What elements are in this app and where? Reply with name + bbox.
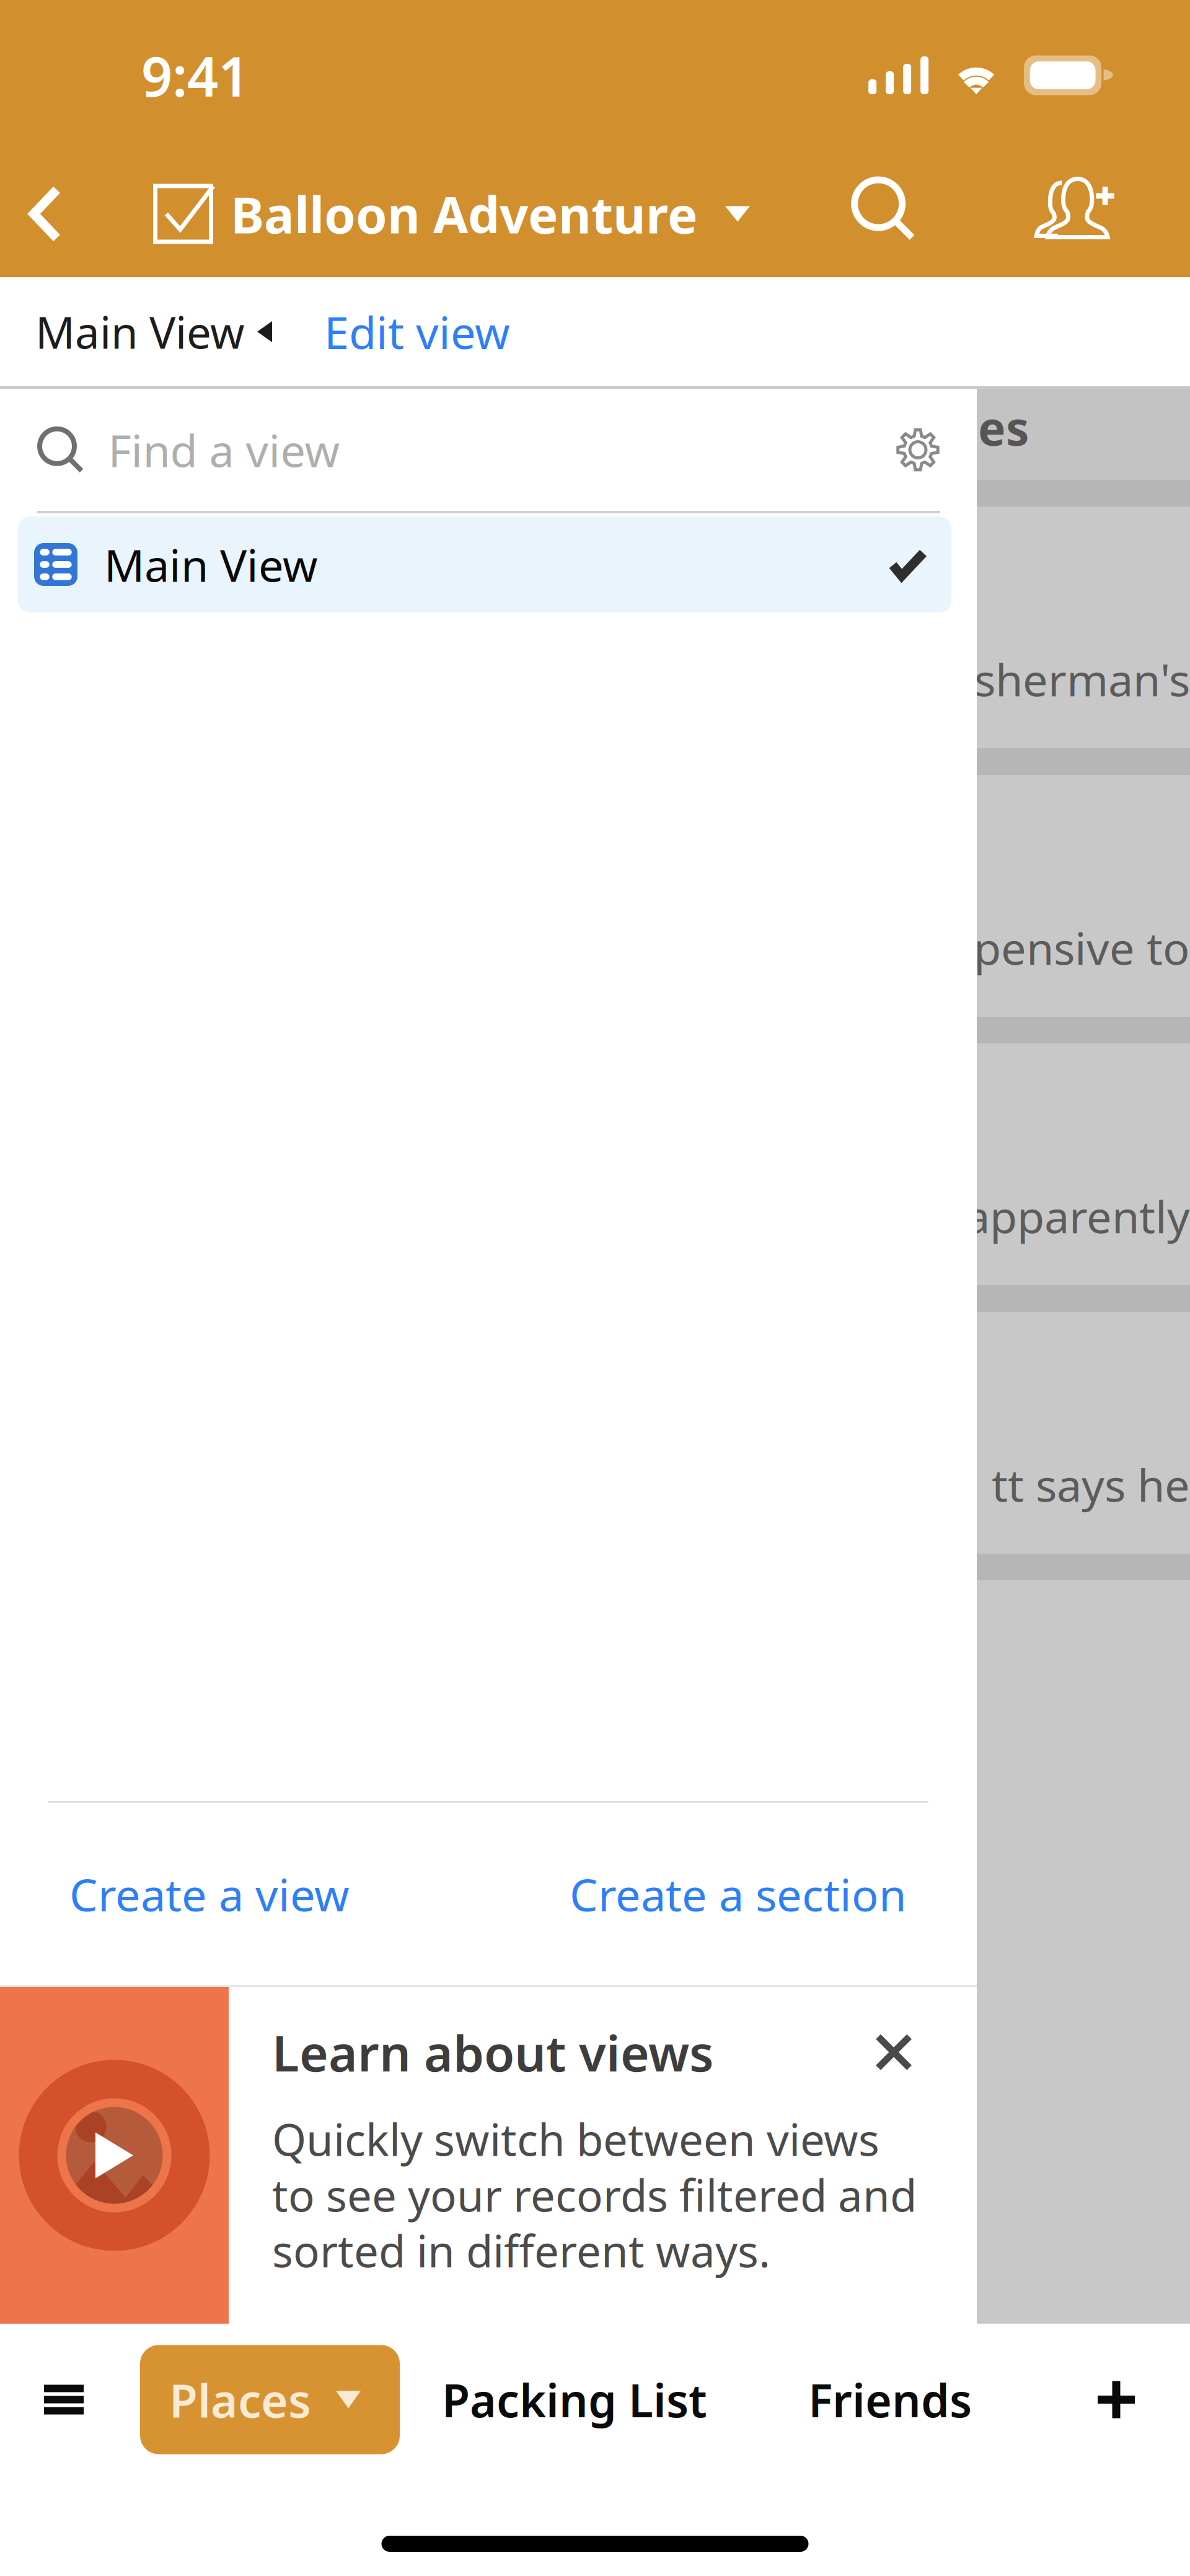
staticText: Edit view <box>324 302 510 361</box>
staticText: Main View <box>104 535 318 594</box>
button[interactable]: Menu <box>0 2345 140 2454</box>
button[interactable]: Search <box>846 155 992 273</box>
staticText: isherman's <box>963 649 1190 709</box>
staticText: Find a view <box>108 420 340 479</box>
button[interactable]: Edit view <box>272 277 529 386</box>
button[interactable]: Balloon Adventure <box>92 155 750 273</box>
staticText: Create a view <box>69 1864 350 1924</box>
staticText: tt says he <box>992 1455 1190 1514</box>
staticText: es <box>978 397 1029 458</box>
button[interactable]: Dismiss <box>863 2022 924 2083</box>
staticText: xpensive to <box>950 918 1190 977</box>
button[interactable]: Main View <box>0 516 977 613</box>
staticText: Learn about views <box>272 2019 713 2085</box>
staticText: Places <box>169 2369 311 2430</box>
staticText: Balloon Adventure <box>231 180 698 247</box>
button[interactable]: Places <box>140 2345 400 2454</box>
button[interactable]: Create a section <box>570 1803 962 1985</box>
staticText: Create a section <box>570 1864 906 1924</box>
staticText: Main View <box>35 303 245 361</box>
staticText: 9:41 <box>141 39 249 112</box>
button[interactable]: Add <box>1073 2345 1190 2454</box>
staticText: Packing List <box>442 2369 707 2430</box>
button[interactable]: Back <box>0 155 92 273</box>
button[interactable]: Main View <box>0 277 272 386</box>
button[interactable]: Friends <box>760 2345 1026 2454</box>
button[interactable]: Add collaborators <box>992 155 1190 273</box>
staticText: apparently <box>965 1186 1190 1246</box>
button[interactable]: Create a view <box>0 1803 570 1985</box>
button[interactable]: View settings <box>880 413 956 486</box>
staticText: Quickly switch between views to see your… <box>272 2110 917 2279</box>
button[interactable]: Packing List <box>400 2345 760 2454</box>
staticText: Friends <box>808 2369 972 2430</box>
